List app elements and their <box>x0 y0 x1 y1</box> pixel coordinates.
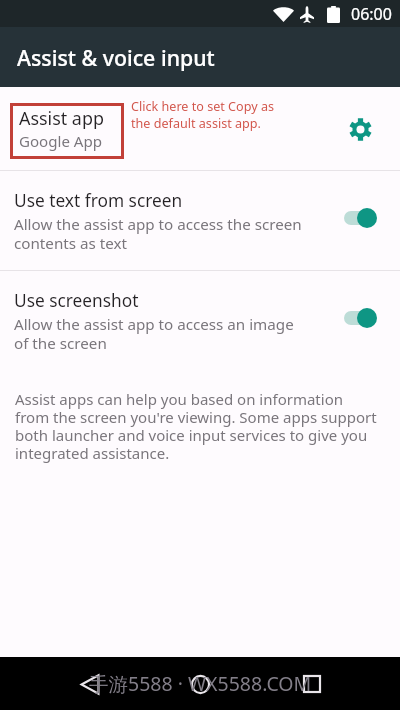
button[interactable]: Toggle Use text from screen <box>335 194 383 242</box>
staticText: Use screenshot <box>14 289 139 313</box>
staticText: the default assist app. <box>131 115 261 132</box>
staticText: Google App <box>19 131 103 152</box>
staticText: Click here to set Copy as <box>131 98 274 115</box>
staticText: Assist app <box>19 106 104 130</box>
staticText: Allow the assist app to access the scree… <box>14 214 302 253</box>
button[interactable]: Use screenshot <box>0 271 400 370</box>
staticText: 06:00 <box>351 3 392 25</box>
button[interactable]: Use text from screen <box>0 171 400 270</box>
button[interactable]: Assist app <box>0 87 400 170</box>
staticText: Use text from screen <box>14 189 183 213</box>
staticText: 手游5588 · WX5588.COM <box>89 670 312 697</box>
button[interactable]: Back <box>74 668 106 700</box>
button[interactable]: Assist app settings <box>343 112 377 146</box>
button[interactable]: Toggle Use screenshot <box>335 294 383 342</box>
staticText: Allow the assist app to access an image … <box>14 314 294 353</box>
button[interactable]: Recent apps <box>296 668 328 700</box>
button[interactable]: Home <box>184 668 216 700</box>
staticText: Assist apps can help you based on inform… <box>15 389 377 463</box>
staticText: Assist & voice input <box>17 43 215 72</box>
